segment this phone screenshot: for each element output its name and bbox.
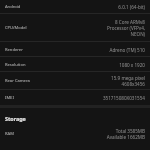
staticText: CPU/Model bbox=[5, 25, 27, 31]
button[interactable]: Storage bbox=[0, 108, 150, 128]
button[interactable]: RAM bbox=[0, 125, 150, 143]
staticText: IMEI bbox=[5, 95, 14, 101]
button[interactable]: Renderer bbox=[0, 42, 150, 57]
staticText: 6.0.1 (64-bit) bbox=[85, 4, 145, 10]
button[interactable]: CPU/Model bbox=[0, 14, 150, 42]
staticText: 1080 x 1920 bbox=[85, 62, 145, 68]
staticText: 8 Core ARMv8 Processor (VFPv4, NEON) bbox=[85, 19, 145, 37]
staticText: Rear Camera bbox=[5, 78, 30, 84]
staticText: Adreno (TM) 510 bbox=[85, 47, 145, 53]
staticText: Resolution bbox=[5, 62, 26, 68]
button[interactable]: IMEI bbox=[0, 90, 150, 106]
staticText: Storage bbox=[5, 115, 26, 122]
button[interactable]: Resolution bbox=[0, 57, 150, 72]
button[interactable]: Android bbox=[0, 0, 150, 14]
staticText: RAM bbox=[5, 131, 14, 137]
staticText: Android bbox=[5, 4, 21, 10]
staticText: Renderer bbox=[5, 47, 23, 53]
staticText: 15.9 mega pixel 4608x3456 bbox=[85, 75, 145, 87]
button[interactable]: Rear Camera bbox=[0, 72, 150, 90]
staticText: 351715080X031554 bbox=[85, 95, 145, 101]
staticText: Total 3585MB Available 1662MB bbox=[85, 128, 145, 140]
